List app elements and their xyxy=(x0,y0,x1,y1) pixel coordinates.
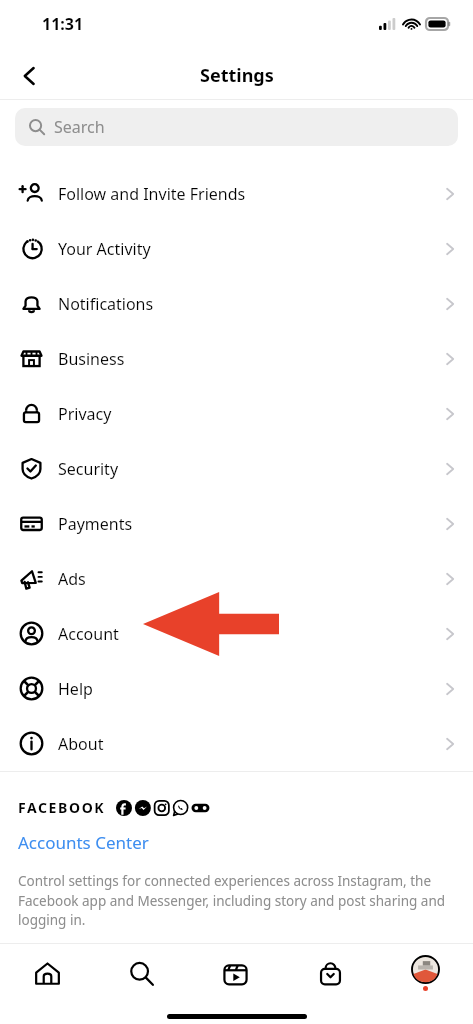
staticText: Notifications xyxy=(58,293,154,315)
button[interactable]: Follow and Invite Friends xyxy=(0,166,473,221)
staticText: Account xyxy=(58,623,119,645)
button[interactable]: Reels xyxy=(188,944,283,1002)
button[interactable]: Business xyxy=(0,331,473,386)
button[interactable]: About xyxy=(0,716,473,771)
button[interactable]: Payments xyxy=(0,496,473,551)
button[interactable]: Accounts Center xyxy=(18,831,149,854)
staticText: Settings xyxy=(200,63,274,88)
button[interactable]: Account xyxy=(0,606,473,661)
staticText: Business xyxy=(58,348,125,370)
button[interactable]: Home xyxy=(0,944,94,1002)
staticText: Privacy xyxy=(58,403,112,425)
staticText: Ads xyxy=(58,568,86,590)
staticText: 11:31 xyxy=(42,13,84,35)
staticText: Search xyxy=(54,116,105,138)
staticText: Follow and Invite Friends xyxy=(58,183,246,205)
button[interactable]: Your Activity xyxy=(0,221,473,276)
button[interactable]: Notifications xyxy=(0,276,473,331)
staticText: Help xyxy=(58,678,93,700)
button[interactable]: Search xyxy=(94,944,188,1002)
button[interactable]: Help xyxy=(0,661,473,716)
button[interactable]: Privacy xyxy=(0,386,473,441)
button[interactable]: Security xyxy=(0,441,473,496)
staticText: Your Activity xyxy=(58,238,151,260)
staticText: About xyxy=(58,733,104,755)
staticText: Payments xyxy=(58,513,133,535)
staticText: Security xyxy=(58,458,119,480)
staticText: FACEBOOK xyxy=(18,798,106,817)
button[interactable]: Back xyxy=(8,54,52,98)
button[interactable]: Ads xyxy=(0,551,473,606)
button[interactable]: Search xyxy=(15,108,458,146)
staticText: Control settings for connected experienc… xyxy=(18,872,455,929)
staticText: Accounts Center xyxy=(18,831,149,854)
button[interactable]: Profile xyxy=(378,944,473,1002)
button[interactable]: Shop xyxy=(283,944,378,1002)
